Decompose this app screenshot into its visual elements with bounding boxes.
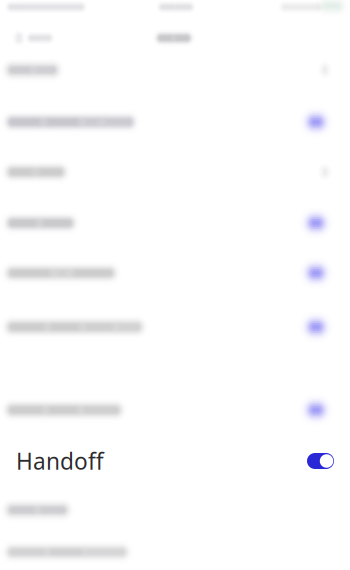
button[interactable]: Back (0, 19, 96, 57)
button[interactable] (0, 527, 350, 570)
button[interactable] (0, 385, 350, 435)
button[interactable]: Handoff (0, 436, 350, 486)
staticText: Handoff (16, 446, 104, 476)
button[interactable] (0, 302, 350, 352)
button[interactable] (0, 485, 350, 535)
button[interactable] (0, 97, 350, 147)
button[interactable] (0, 45, 350, 95)
button[interactable] (0, 147, 350, 197)
button[interactable] (0, 198, 350, 248)
button[interactable] (0, 248, 350, 298)
